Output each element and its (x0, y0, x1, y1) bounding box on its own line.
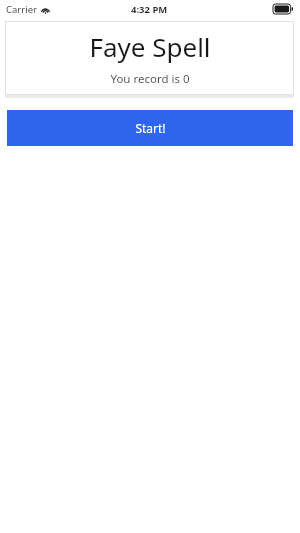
staticText: Carrier (6, 3, 37, 16)
staticText: Start! (135, 120, 166, 136)
staticText: Faye Spell (89, 29, 211, 64)
staticText: You record is 0 (110, 71, 190, 87)
button[interactable]: Faye Spell (5, 21, 294, 95)
button[interactable]: Start! (7, 110, 293, 146)
staticText: 4:32 PM (131, 3, 168, 16)
